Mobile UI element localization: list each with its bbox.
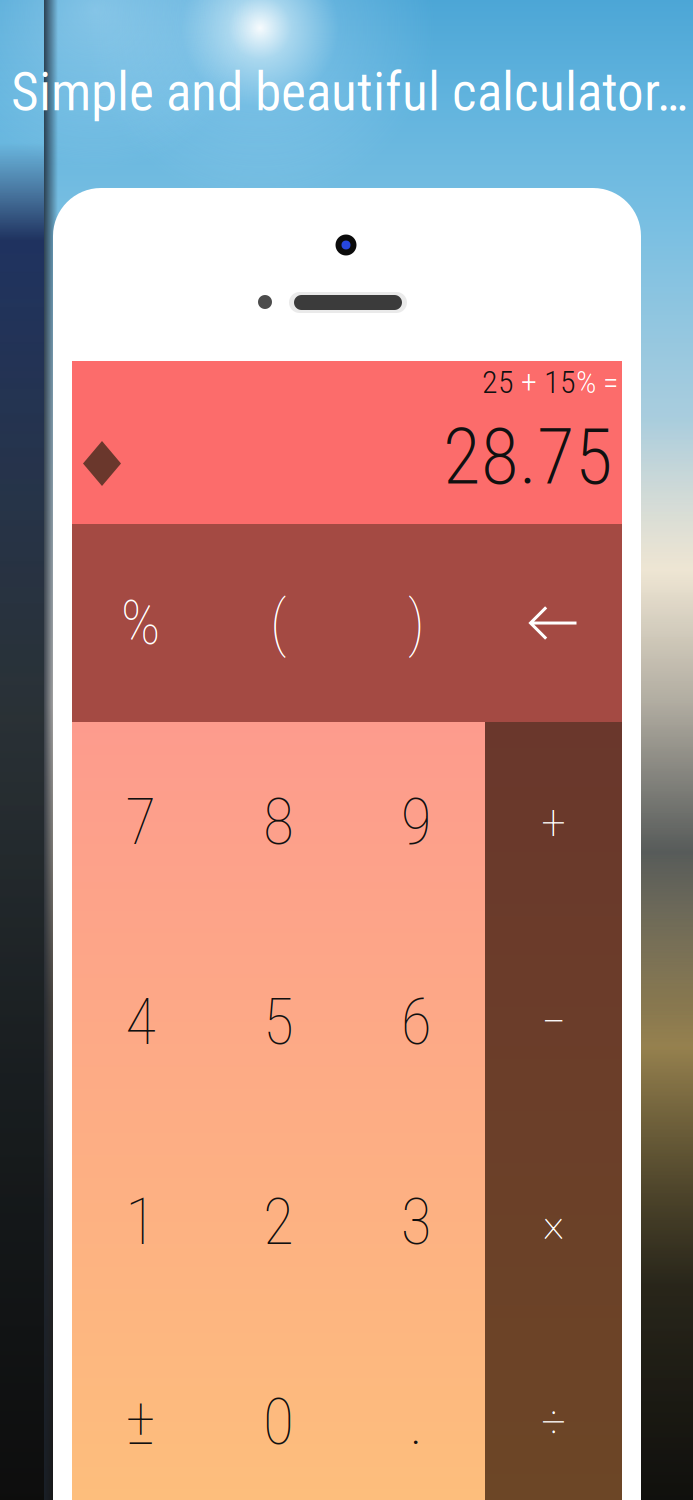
button[interactable]: % [72, 524, 210, 722]
staticText: 6 [401, 984, 432, 1059]
staticText: % [121, 587, 161, 659]
button[interactable]: ÷ [485, 1322, 622, 1500]
staticText: 15 [544, 363, 576, 401]
button[interactable]: 2 [210, 1122, 347, 1322]
staticText: 0 [263, 1384, 294, 1459]
staticText: 2 [263, 1184, 294, 1259]
staticText: + [514, 363, 544, 401]
staticText: − [541, 992, 566, 1052]
staticText: 8 [263, 784, 294, 859]
button[interactable]: 5 [210, 922, 347, 1122]
staticText: 3 [401, 1184, 432, 1259]
staticText: ± [126, 1384, 156, 1459]
button[interactable]: ± [72, 1322, 210, 1500]
staticText: . [409, 1384, 423, 1459]
staticText: 1 [125, 1184, 156, 1259]
button[interactable]: + [485, 722, 622, 922]
staticText: ÷ [541, 1392, 566, 1452]
staticText: % [576, 363, 596, 401]
button[interactable]: ) [347, 524, 485, 722]
button[interactable]: 7 [72, 722, 210, 922]
staticText: Simple and beautiful calculator… [11, 61, 688, 123]
staticText: 5 [263, 984, 294, 1059]
staticText: 28.75 [443, 412, 613, 502]
button[interactable]: − [485, 922, 622, 1122]
button[interactable]: . [347, 1322, 485, 1500]
button[interactable]: 0 [210, 1322, 347, 1500]
button[interactable]: 3 [347, 1122, 485, 1322]
staticText: ) [408, 587, 425, 659]
staticText: 7 [125, 784, 156, 859]
button[interactable]: × [485, 1122, 622, 1322]
staticText: ( [270, 587, 287, 659]
staticText: + [541, 792, 566, 852]
button[interactable]: 9 [347, 722, 485, 922]
button[interactable]: 8 [210, 722, 347, 922]
button[interactable]: 6 [347, 922, 485, 1122]
staticText: × [542, 1192, 565, 1252]
staticText: 4 [125, 984, 156, 1059]
staticText: = [596, 363, 618, 401]
staticText: 9 [401, 784, 432, 859]
button[interactable]: ( [210, 524, 347, 722]
staticText: 25 [482, 363, 514, 401]
button[interactable]: 4 [72, 922, 210, 1122]
button[interactable]: 1 [72, 1122, 210, 1322]
button[interactable]: Backspace [485, 524, 622, 722]
